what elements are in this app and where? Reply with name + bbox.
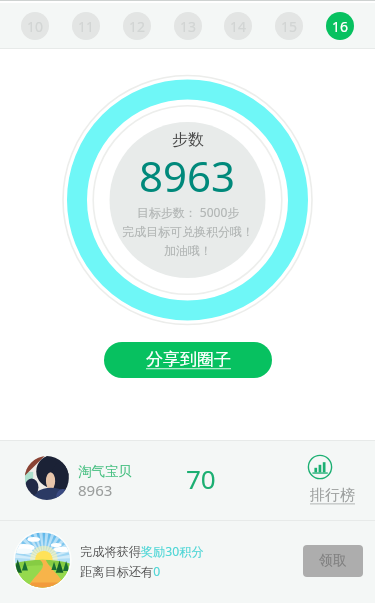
button[interactable]: 排行榜: [310, 486, 355, 505]
staticText: 目标步数： 5000步 完成目标可兑换积分哦！ 加油哦！: [122, 204, 254, 259]
staticText: 分享到圈子: [146, 349, 231, 370]
button[interactable]: 淘气宝贝: [0, 441, 375, 520]
staticText: 11: [78, 17, 95, 36]
staticText: 13: [180, 17, 197, 36]
button[interactable]: 分享到圈子: [104, 342, 272, 378]
staticText: 16: [332, 17, 349, 36]
staticText: 排行榜: [310, 486, 355, 505]
staticText: 12: [129, 17, 146, 36]
button[interactable]: 领取: [303, 545, 363, 577]
staticText: 70: [186, 461, 216, 496]
staticText: 8963: [78, 480, 113, 500]
staticText: 步数: [172, 130, 204, 150]
staticText: 距离目标还有0: [80, 563, 161, 580]
button[interactable]: 10: [21, 12, 49, 40]
button[interactable]: 14: [224, 12, 252, 40]
button[interactable]: 排行榜: [307, 454, 333, 480]
button[interactable]: 13: [174, 12, 202, 40]
staticText: 淘气宝贝: [78, 463, 132, 480]
staticText: 8963: [139, 147, 236, 204]
staticText: 领取: [319, 552, 347, 570]
staticText: 15: [281, 17, 298, 36]
button[interactable]: 15: [275, 12, 303, 40]
button[interactable]: 11: [72, 12, 100, 40]
button[interactable]: 16: [326, 12, 354, 40]
button[interactable]: 12: [123, 12, 151, 40]
staticText: 10: [27, 17, 44, 36]
staticText: 完成将获得奖励30积分: [80, 543, 204, 560]
staticText: 14: [230, 17, 247, 36]
